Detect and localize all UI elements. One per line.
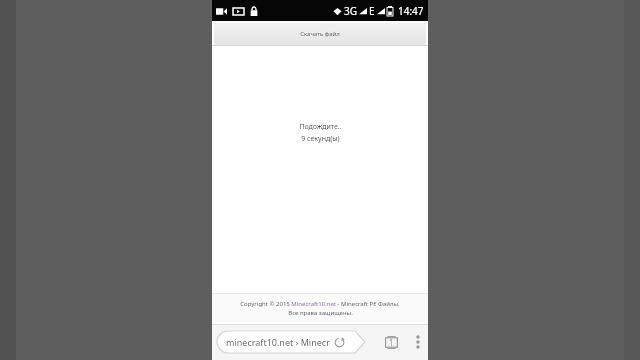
- staticText: Подождите..: [299, 122, 342, 132]
- button[interactable]: Скачать файл: [214, 23, 426, 45]
- button[interactable]: More options: [412, 332, 424, 352]
- other: Reload: [334, 337, 345, 348]
- staticText: Все права защищены.: [288, 309, 353, 317]
- staticText: 1: [389, 337, 394, 348]
- staticText: 3G: [344, 4, 357, 18]
- staticText: Copyright © 2015 Minecraft10.net - Minec…: [240, 300, 400, 308]
- staticText: Скачать файл: [300, 30, 340, 38]
- button[interactable]: minecraft10.net › Minecr: [217, 331, 365, 353]
- staticText: 14:47: [398, 4, 424, 18]
- staticText: minecraft10.net › Minecr: [226, 336, 330, 348]
- staticText: E: [369, 4, 375, 18]
- staticText: 9 секунд(ы): [301, 134, 340, 144]
- button[interactable]: Tabs, 1 open: [381, 332, 401, 352]
